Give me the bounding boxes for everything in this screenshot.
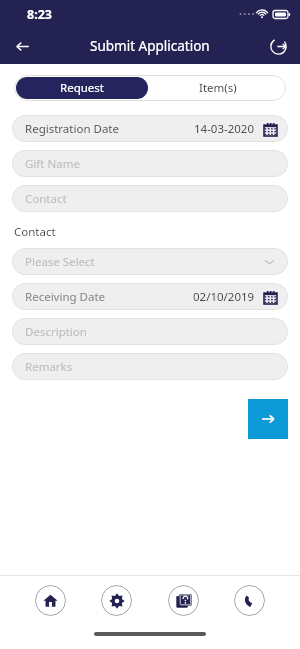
button[interactable]: Description	[12, 318, 288, 345]
button[interactable]: Call	[234, 585, 265, 616]
staticText: 8:23	[27, 6, 52, 23]
staticText: Remarks	[25, 359, 73, 375]
staticText: Contact	[14, 224, 56, 240]
button[interactable]: Logout	[261, 29, 295, 63]
button[interactable]: Back	[5, 29, 39, 63]
button[interactable]: Please Select	[12, 248, 288, 275]
staticText: Receiving Date	[25, 289, 106, 305]
button[interactable]: Gift Name	[12, 150, 288, 177]
button[interactable]: Registration Date	[12, 115, 288, 142]
button[interactable]: Item(s)	[150, 75, 286, 101]
button[interactable]: Settings	[101, 585, 132, 616]
staticText: Registration Date	[25, 121, 119, 137]
button[interactable]: FAQ	[168, 585, 199, 616]
staticText: 14-03-2020	[194, 121, 255, 137]
button[interactable]: Contact	[12, 185, 288, 212]
staticText: Description	[25, 324, 87, 340]
staticText: Gift Name	[25, 156, 80, 172]
button[interactable]: Submit	[248, 399, 288, 439]
staticText: Request	[60, 80, 104, 96]
staticText: Please Select	[25, 254, 95, 270]
button[interactable]: Remarks	[12, 353, 288, 380]
staticText: 02/10/2019	[193, 289, 255, 305]
staticText: Item(s)	[199, 80, 237, 96]
button[interactable]: Home	[35, 585, 66, 616]
staticText: Submit Application	[90, 37, 210, 55]
button[interactable]: Request	[16, 77, 148, 99]
button[interactable]: Receiving Date	[12, 283, 288, 310]
staticText: Contact	[25, 191, 67, 207]
